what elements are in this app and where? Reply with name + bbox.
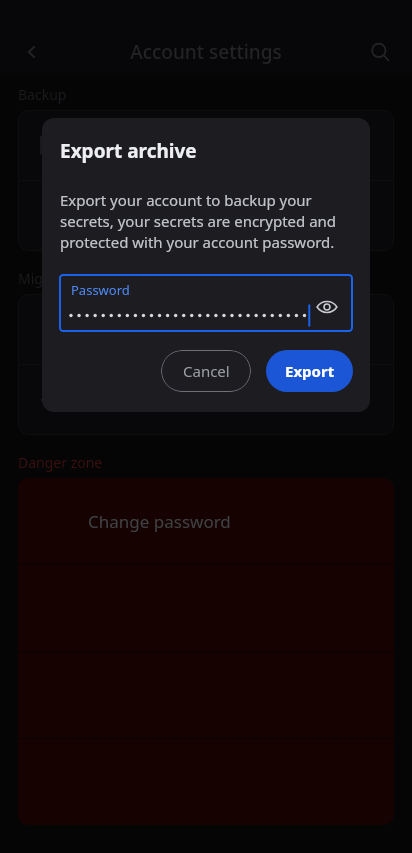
staticText: Danger zone: [18, 453, 103, 472]
staticText: Migration: [18, 269, 83, 288]
button[interactable]: Search: [360, 32, 400, 72]
staticText: Cancel: [183, 361, 230, 381]
staticText: Change password: [88, 510, 231, 533]
button[interactable]: Setting: [18, 181, 394, 251]
button[interactable]: Back: [12, 32, 52, 72]
button[interactable]: Cancel: [161, 350, 251, 392]
staticText: Account settings: [130, 39, 282, 65]
staticText: Backup: [18, 85, 67, 104]
button[interactable]: Password: [59, 274, 353, 332]
button[interactable]: Setting: [18, 365, 394, 435]
staticText: Password: [71, 281, 130, 299]
staticText: Export archive: [60, 138, 197, 164]
staticText: Export your account to backup your secre…: [60, 190, 350, 253]
button[interactable]: Export: [266, 350, 353, 392]
button[interactable]: Setting: [18, 294, 394, 364]
button[interactable]: Change password: [18, 478, 394, 564]
button[interactable]: Show password: [312, 292, 342, 322]
button[interactable]: Setting: [18, 110, 394, 180]
staticText: Export: [285, 361, 335, 381]
